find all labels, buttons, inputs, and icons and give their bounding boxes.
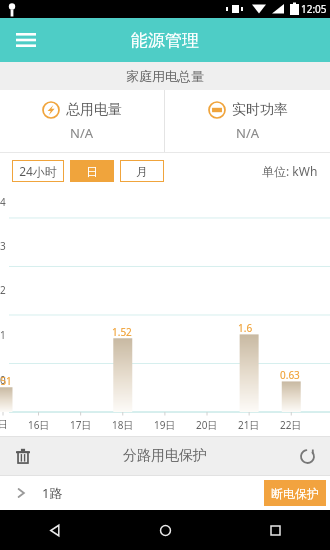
button[interactable]: 24小时: [12, 160, 64, 182]
staticText: 16日: [28, 418, 50, 432]
staticText: 12:05: [301, 2, 327, 16]
button[interactable]: 断电保护: [264, 480, 326, 506]
button[interactable]: 1路: [0, 476, 330, 510]
staticText: 1.52: [112, 325, 132, 339]
staticText: 1.6: [238, 321, 253, 335]
staticText: 1路: [42, 484, 63, 502]
staticText: 1: [0, 328, 6, 342]
staticText: N/A: [236, 124, 260, 142]
button[interactable]: Home: [110, 510, 220, 550]
staticText: 3: [0, 239, 6, 253]
staticText: 日: [86, 164, 98, 179]
staticText: N/A: [70, 124, 94, 142]
button[interactable]: Menu: [8, 22, 44, 58]
staticText: 家庭用电总量: [126, 68, 204, 84]
staticText: 0.51: [0, 374, 12, 388]
staticText: 实时功率: [232, 101, 288, 119]
staticText: 断电保护: [271, 486, 319, 501]
staticText: 21日: [238, 418, 260, 432]
staticText: 日: [0, 418, 8, 431]
staticText: 0: [0, 373, 6, 387]
staticText: 分路用电保护: [123, 447, 207, 465]
staticText: 18日: [112, 418, 134, 432]
staticText: 20日: [196, 418, 218, 432]
staticText: 24小时: [19, 163, 57, 179]
staticText: 4: [0, 195, 6, 209]
staticText: 单位: kWh: [262, 163, 318, 179]
button[interactable]: 总用电量: [0, 90, 164, 152]
staticText: 2: [0, 283, 6, 297]
staticText: 月: [136, 164, 148, 179]
button[interactable]: Delete: [6, 439, 40, 473]
button[interactable]: Back: [0, 510, 110, 550]
button[interactable]: 实时功率: [165, 90, 330, 152]
staticText: 0.63: [280, 368, 300, 382]
button[interactable]: Recents: [220, 510, 330, 550]
button[interactable]: 日: [70, 160, 114, 182]
button[interactable]: 月: [120, 160, 164, 182]
staticText: 总用电量: [66, 101, 122, 119]
button[interactable]: Refresh: [290, 439, 324, 473]
staticText: 22日: [280, 418, 302, 432]
staticText: 19日: [154, 418, 176, 432]
staticText: 能源管理: [131, 30, 199, 51]
staticText: 17日: [70, 418, 92, 432]
